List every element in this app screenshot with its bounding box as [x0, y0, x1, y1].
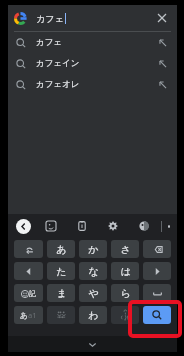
other: Google — [14, 12, 27, 25]
staticText: わ — [88, 309, 99, 322]
staticText: カフェイン — [36, 58, 80, 69]
button[interactable]: カフェオレ — [8, 74, 177, 95]
button[interactable]: Backspace — [143, 240, 171, 258]
other: Space — [143, 284, 171, 302]
other: Punctuation — [111, 306, 139, 324]
other: Undo — [14, 240, 43, 258]
button[interactable]: Cursor left — [14, 262, 43, 280]
button[interactable]: ま — [47, 284, 75, 302]
other: Backspace — [143, 240, 171, 258]
button[interactable]: あ — [47, 240, 75, 258]
staticText: は — [120, 265, 131, 278]
button[interactable]: Emoji and symbols — [14, 284, 43, 302]
staticText: カフェ — [36, 37, 63, 48]
staticText: カフェ — [36, 13, 64, 24]
button[interactable]: Punctuation — [111, 306, 139, 324]
button[interactable]: Back — [16, 219, 31, 234]
button[interactable]: Search — [143, 306, 171, 324]
staticText: さ — [120, 243, 131, 256]
button[interactable]: Space — [143, 284, 171, 302]
staticText: a1 — [28, 310, 37, 320]
button[interactable]: Kaomoji — [47, 306, 75, 324]
button[interactable]: わ — [79, 306, 107, 324]
staticText: ま — [56, 287, 67, 300]
staticText: た — [56, 265, 67, 278]
button[interactable]: や — [79, 284, 107, 302]
button[interactable]: theme — [137, 219, 151, 233]
staticText: ら — [120, 287, 131, 300]
button[interactable]: Insert — [157, 79, 169, 91]
staticText: あ — [20, 311, 28, 320]
other: Search — [143, 306, 171, 324]
other: Cursor left — [14, 262, 43, 280]
button[interactable]: Insert — [157, 58, 169, 70]
button[interactable]: clipboard — [75, 219, 89, 233]
button[interactable]: あ — [14, 306, 43, 324]
other: Kaomoji — [47, 306, 75, 324]
button[interactable]: カフェイン — [8, 53, 177, 74]
button[interactable]: settings — [106, 219, 120, 233]
button[interactable]: sticker — [44, 219, 58, 233]
staticText: 記 — [29, 289, 36, 298]
button[interactable]: Insert — [157, 37, 169, 49]
staticText: か — [88, 243, 99, 256]
button[interactable]: Hide keyboard — [8, 336, 177, 352]
button[interactable]: カフェ — [8, 32, 177, 53]
button[interactable]: た — [47, 262, 75, 280]
staticText: な — [88, 265, 99, 278]
staticText: や — [88, 287, 99, 300]
button[interactable]: Cursor right — [143, 262, 171, 280]
button[interactable]: か — [79, 240, 107, 258]
button[interactable]: な — [79, 262, 107, 280]
button[interactable]: Google — [8, 5, 177, 31]
other: Emoji and symbols — [14, 284, 43, 302]
button[interactable]: Clear — [153, 9, 171, 27]
button[interactable]: Undo — [14, 240, 43, 258]
staticText: カフェオレ — [36, 79, 80, 90]
button[interactable]: ら — [111, 284, 139, 302]
staticText: あ — [56, 243, 67, 256]
button[interactable]: は — [111, 262, 139, 280]
other: Cursor right — [143, 262, 171, 280]
button[interactable]: さ — [111, 240, 139, 258]
